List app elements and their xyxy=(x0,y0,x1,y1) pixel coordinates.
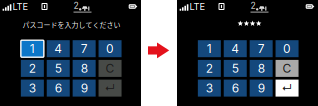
button[interactable]: 7 xyxy=(250,40,273,57)
staticText: 3 xyxy=(29,81,36,95)
button[interactable]: 2 xyxy=(198,60,221,77)
staticText: LTE xyxy=(12,1,28,12)
staticText: 7 xyxy=(258,41,265,56)
staticText: 5 xyxy=(232,61,239,76)
staticText: 4 xyxy=(54,41,62,56)
staticText: 0 xyxy=(283,41,291,56)
button[interactable]: C xyxy=(275,60,298,77)
button[interactable]: C xyxy=(98,60,121,77)
button[interactable]: ↵ xyxy=(98,80,121,97)
button[interactable]: 9 xyxy=(250,80,273,97)
staticText: 8 xyxy=(258,61,265,76)
button[interactable]: 4 xyxy=(224,40,247,57)
staticText: 0 xyxy=(106,41,114,56)
button[interactable]: 5 xyxy=(224,60,247,77)
staticText: 1 xyxy=(207,41,212,56)
button[interactable]: ↵ xyxy=(275,80,298,97)
button[interactable]: 3 xyxy=(198,80,221,97)
staticText: 3 xyxy=(206,81,213,95)
staticText: 2 xyxy=(73,0,78,11)
staticText: 2 xyxy=(206,61,213,76)
staticText: 6 xyxy=(232,81,239,95)
staticText: LTE xyxy=(189,1,205,12)
staticText: 5 xyxy=(55,61,62,76)
button[interactable]: 0 xyxy=(275,40,298,57)
staticText: 2 xyxy=(29,61,36,76)
button[interactable]: 7 xyxy=(73,40,96,57)
button[interactable]: 5 xyxy=(47,60,70,77)
button[interactable]: 8 xyxy=(250,60,273,77)
staticText: 7 xyxy=(81,41,88,56)
staticText: 2 xyxy=(250,0,255,11)
staticText: 6 xyxy=(55,81,62,95)
button[interactable]: 1 xyxy=(21,40,44,57)
button[interactable]: 6 xyxy=(224,80,247,97)
staticText: 9 xyxy=(81,81,88,95)
staticText: C xyxy=(282,61,291,76)
staticText: ↵ xyxy=(281,82,292,94)
button[interactable]: 9 xyxy=(73,80,96,97)
button[interactable]: 0 xyxy=(98,40,121,57)
staticText: 4 xyxy=(231,41,239,56)
staticText: ↵ xyxy=(104,82,115,94)
staticText: 8 xyxy=(81,61,88,76)
staticText: C xyxy=(105,61,114,76)
button[interactable]: 4 xyxy=(47,40,70,57)
button[interactable]: 2 xyxy=(21,60,44,77)
button[interactable]: 3 xyxy=(21,80,44,97)
staticText: 9 xyxy=(258,81,265,95)
staticText: パスコードを入力してください xyxy=(22,19,120,29)
button[interactable]: 6 xyxy=(47,80,70,97)
button[interactable]: 8 xyxy=(73,60,96,77)
button[interactable]: 1 xyxy=(198,40,221,57)
staticText: 1 xyxy=(30,41,35,56)
